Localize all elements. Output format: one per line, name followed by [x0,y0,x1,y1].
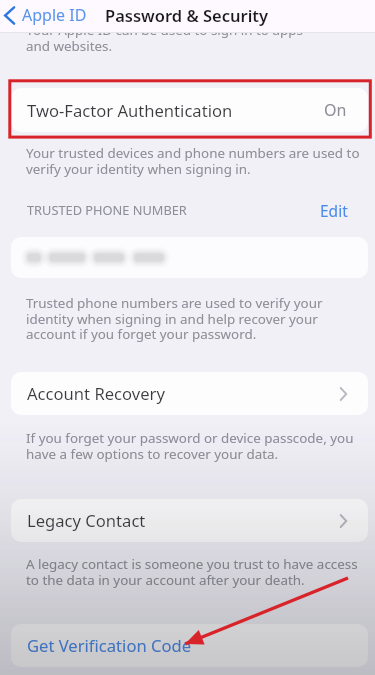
staticText: TRUSTED PHONE NUMBER [27,201,187,218]
staticText: Account Recovery [27,382,165,405]
button[interactable]: Edit [318,198,350,223]
staticText: Apple ID [22,4,87,26]
staticText: On [324,99,347,121]
button[interactable]: Get Verification Code [11,624,368,667]
staticText: Your trusted devices and phone numbers a… [26,144,375,178]
button[interactable]: Apple ID [2,2,89,32]
staticText: Trusted phone numbers are used to verify… [26,294,375,343]
button[interactable]: Two-Factor Authentication [11,88,368,132]
button[interactable]: Legacy Contact [11,499,368,542]
staticText: A legacy contact is someone you trust to… [26,555,375,589]
staticText: Two-Factor Authentication [27,99,233,122]
staticText: Your Apple ID can be used to sign in to … [26,21,375,55]
staticText: Edit [320,200,348,221]
button[interactable]: Account Recovery [11,372,368,415]
staticText: Get Verification Code [27,634,192,657]
button[interactable] [11,237,368,278]
staticText: If you forget your password or device pa… [26,429,375,463]
staticText: Legacy Contact [27,509,146,532]
staticText: Password & Security [105,4,269,26]
